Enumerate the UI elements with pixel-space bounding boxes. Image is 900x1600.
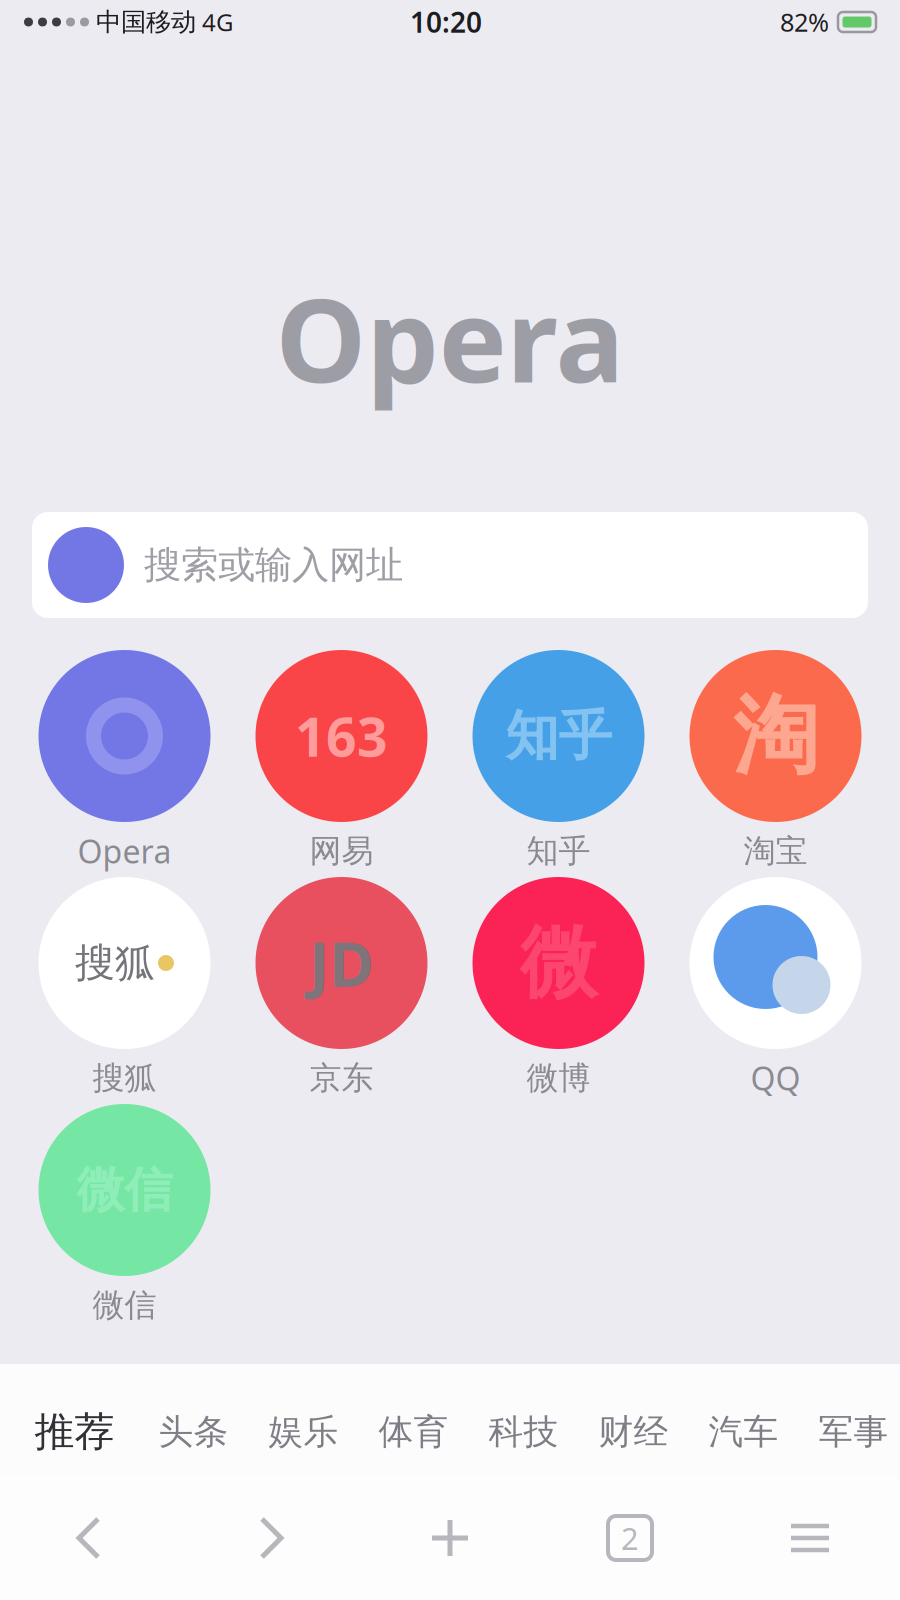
button[interactable]: 知乎 — [450, 650, 667, 868]
staticText: Opera — [77, 830, 171, 872]
button[interactable]: QQ — [667, 877, 884, 1095]
staticText: 网易 — [309, 831, 373, 871]
staticText: QQ — [750, 1057, 800, 1099]
button[interactable]: Tabs — [540, 1476, 720, 1600]
staticText: 163 — [295, 701, 388, 771]
button[interactable]: 军事 — [798, 1407, 900, 1457]
staticText: 科技 — [488, 1411, 558, 1453]
staticText: 4G — [202, 6, 233, 38]
button[interactable]: Back — [0, 1476, 180, 1600]
button[interactable]: Opera — [16, 650, 233, 868]
staticText: 财经 — [598, 1411, 668, 1453]
staticText: 搜狐 — [75, 938, 155, 987]
button[interactable]: JD — [233, 877, 450, 1095]
staticText: 微信 — [92, 1285, 156, 1325]
staticText: 微博 — [526, 1058, 590, 1098]
staticText: 头条 — [158, 1411, 228, 1453]
staticText: 微 — [520, 915, 597, 1010]
staticText: 10:20 — [410, 3, 482, 41]
button[interactable]: 科技 — [468, 1407, 578, 1457]
button[interactable]: 财经 — [578, 1407, 688, 1457]
button[interactable]: 淘 — [667, 650, 884, 868]
button[interactable]: Forward — [180, 1476, 360, 1600]
button[interactable]: 汽车 — [688, 1407, 798, 1457]
button[interactable]: 微 — [450, 877, 667, 1095]
button[interactable]: 头条 — [138, 1407, 248, 1457]
staticText: JD — [309, 922, 374, 1004]
button[interactable]: New tab — [360, 1476, 540, 1600]
staticText: 京东 — [309, 1058, 373, 1098]
staticText: 搜狐 — [92, 1058, 156, 1098]
button[interactable]: 体育 — [358, 1407, 468, 1457]
staticText: 淘 — [733, 684, 818, 788]
staticText: Opera — [275, 262, 624, 414]
staticText: 搜索或输入网址 — [144, 542, 403, 588]
staticText: 汽车 — [708, 1411, 778, 1453]
staticText: 知乎 — [505, 703, 611, 769]
staticText: 军事 — [818, 1411, 888, 1453]
button[interactable]: 推荐 — [10, 1407, 138, 1457]
button[interactable]: 娱乐 — [248, 1407, 358, 1457]
button[interactable]: 163 — [233, 650, 450, 868]
button[interactable]: 搜狐 — [16, 877, 233, 1095]
staticText: 淘宝 — [743, 831, 807, 871]
button[interactable]: 微信 — [16, 1104, 233, 1322]
staticText: 中国移动 — [96, 6, 196, 37]
staticText: 推荐 — [34, 1407, 114, 1456]
staticText: 82% — [780, 5, 829, 39]
button[interactable]: Menu — [720, 1476, 900, 1600]
staticText: 娱乐 — [268, 1411, 338, 1453]
staticText: 知乎 — [526, 831, 590, 871]
staticText: 体育 — [378, 1411, 448, 1453]
staticText: 2 — [621, 1518, 639, 1558]
staticText: 微信 — [76, 1160, 172, 1219]
